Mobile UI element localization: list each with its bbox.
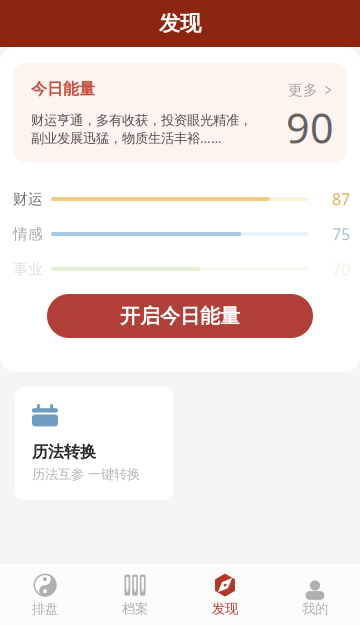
- button[interactable]: 我的: [270, 574, 360, 617]
- staticText: 今日能量: [31, 79, 95, 99]
- staticText: 历法转换: [32, 442, 96, 462]
- staticText: 事业: [13, 260, 43, 278]
- staticText: 更多: [288, 81, 318, 99]
- staticText: 75: [332, 223, 350, 245]
- staticText: 我的: [302, 601, 328, 617]
- staticText: 87: [332, 188, 350, 210]
- staticText: 90: [286, 100, 334, 155]
- staticText: 开启今日能量: [120, 304, 240, 328]
- button[interactable]: 档案: [90, 574, 180, 617]
- staticText: 历法互参 一键转换: [32, 466, 140, 482]
- button[interactable]: 发现: [180, 574, 270, 617]
- staticText: 财运亨通，多有收获，投资眼光精准，: [31, 112, 252, 128]
- button[interactable]: 更多: [288, 81, 332, 99]
- staticText: 发现: [212, 601, 238, 617]
- staticText: 财运: [13, 190, 43, 208]
- staticText: 70: [332, 258, 350, 280]
- button[interactable]: 历法转换: [15, 387, 173, 500]
- button[interactable]: 开启今日能量: [47, 294, 313, 338]
- button[interactable]: 排盘: [0, 574, 90, 617]
- staticText: 排盘: [32, 601, 58, 617]
- staticText: 档案: [122, 601, 148, 617]
- staticText: 副业发展迅猛，物质生活丰裕……: [31, 129, 222, 147]
- staticText: 情感: [13, 225, 43, 243]
- staticText: 发现: [159, 10, 201, 37]
